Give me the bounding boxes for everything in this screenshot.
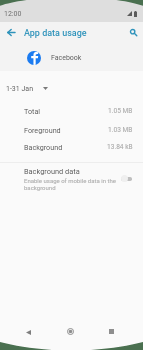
- button[interactable]: Recent apps: [101, 321, 122, 342]
- button[interactable]: Background: [0, 138, 143, 156]
- staticText: Facebook: [51, 54, 82, 62]
- staticText: 1.03 MB: [108, 126, 133, 134]
- staticText: Foreground: [24, 126, 61, 134]
- button[interactable]: Total: [0, 102, 143, 120]
- staticText: 1.05 MB: [108, 107, 133, 115]
- staticText: Total: [24, 107, 41, 115]
- staticText: Background data: [24, 167, 80, 176]
- button[interactable]: Home: [60, 321, 81, 342]
- button[interactable]: Back: [18, 322, 39, 343]
- button[interactable]: Navigate up: [0, 21, 22, 43]
- staticText: App data usage: [24, 28, 87, 39]
- button[interactable]: Foreground: [0, 121, 143, 139]
- button[interactable]: Search: [122, 21, 143, 43]
- staticText: 1-31 Jan: [6, 85, 34, 93]
- button[interactable]: Background data toggle: [0, 163, 143, 195]
- button[interactable]: 1-31 Jan: [0, 78, 143, 99]
- button[interactable]: Facebook: [0, 46, 143, 71]
- staticText: Background: [24, 143, 63, 151]
- staticText: Enable usage of mobile data in the backg…: [24, 177, 116, 191]
- staticText: 13.84 kB: [107, 143, 133, 151]
- staticText: 12:00: [4, 10, 22, 18]
